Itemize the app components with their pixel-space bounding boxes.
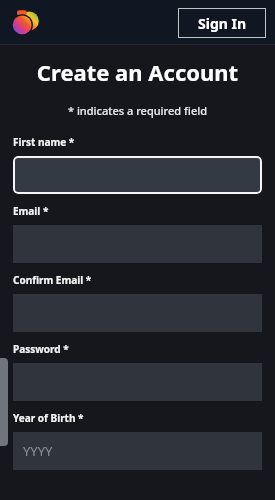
staticText: Year of Birth * bbox=[13, 411, 84, 425]
staticText: Sign In bbox=[198, 14, 247, 33]
staticText: First name * bbox=[13, 135, 75, 149]
staticText: Password * bbox=[13, 342, 69, 356]
button[interactable] bbox=[13, 156, 262, 194]
button[interactable]: YYYY bbox=[13, 432, 262, 470]
staticText: Confirm Email * bbox=[13, 273, 92, 287]
staticText: YYYY bbox=[23, 442, 53, 460]
staticText: * indicates a required field bbox=[0, 103, 275, 118]
button[interactable]: Home bbox=[10, 7, 42, 39]
staticText: Create an Account bbox=[0, 57, 275, 87]
button[interactable]: Sign In bbox=[178, 8, 266, 38]
staticText: Email * bbox=[13, 204, 49, 218]
